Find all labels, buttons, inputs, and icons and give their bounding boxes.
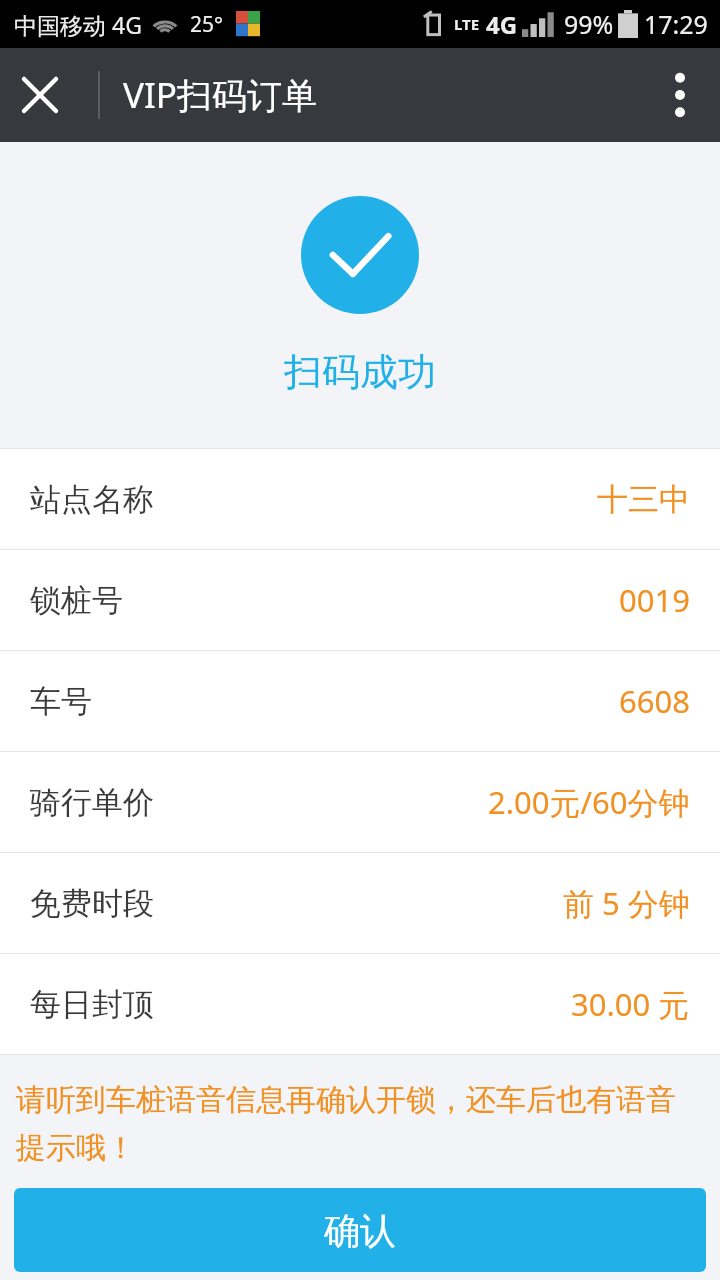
button[interactable]: 骑行单价 — [0, 752, 720, 852]
staticText: 扫码成功 — [284, 348, 436, 396]
staticText: 2.00元/60分钟 — [488, 781, 690, 823]
staticText: 99% — [564, 7, 614, 41]
staticText: 25° — [190, 10, 224, 39]
staticText: 前 5 分钟 — [563, 882, 690, 924]
staticText: 请听到车桩语音信息再确认开锁，还车后也有语音提示哦！ — [16, 1081, 704, 1167]
staticText: 免费时段 — [30, 884, 154, 923]
staticText: VIP扫码订单 — [123, 71, 318, 119]
staticText: 中国移动 4G — [14, 9, 142, 40]
staticText: LTE — [454, 14, 480, 34]
button[interactable]: 锁桩号 — [0, 550, 720, 650]
staticText: 锁桩号 — [30, 581, 123, 620]
staticText: 骑行单价 — [30, 783, 154, 822]
button[interactable]: 确认 — [14, 1188, 706, 1272]
staticText: 4G — [486, 8, 518, 41]
button[interactable]: More options — [640, 55, 720, 135]
staticText: 车号 — [30, 682, 92, 721]
staticText: 站点名称 — [30, 480, 154, 519]
staticText: 17:29 — [644, 7, 708, 41]
staticText: 确认 — [324, 1208, 396, 1253]
staticText: 十三中 — [597, 480, 690, 519]
staticText: 6608 — [619, 680, 690, 722]
button[interactable]: 免费时段 — [0, 853, 720, 953]
staticText: 0019 — [619, 579, 690, 621]
button[interactable]: Close — [0, 55, 80, 135]
button[interactable]: 车号 — [0, 651, 720, 751]
button[interactable]: 站点名称 — [0, 449, 720, 549]
button[interactable]: 每日封顶 — [0, 954, 720, 1054]
staticText: 每日封顶 — [30, 985, 154, 1024]
staticText: 30.00 元 — [571, 983, 690, 1025]
